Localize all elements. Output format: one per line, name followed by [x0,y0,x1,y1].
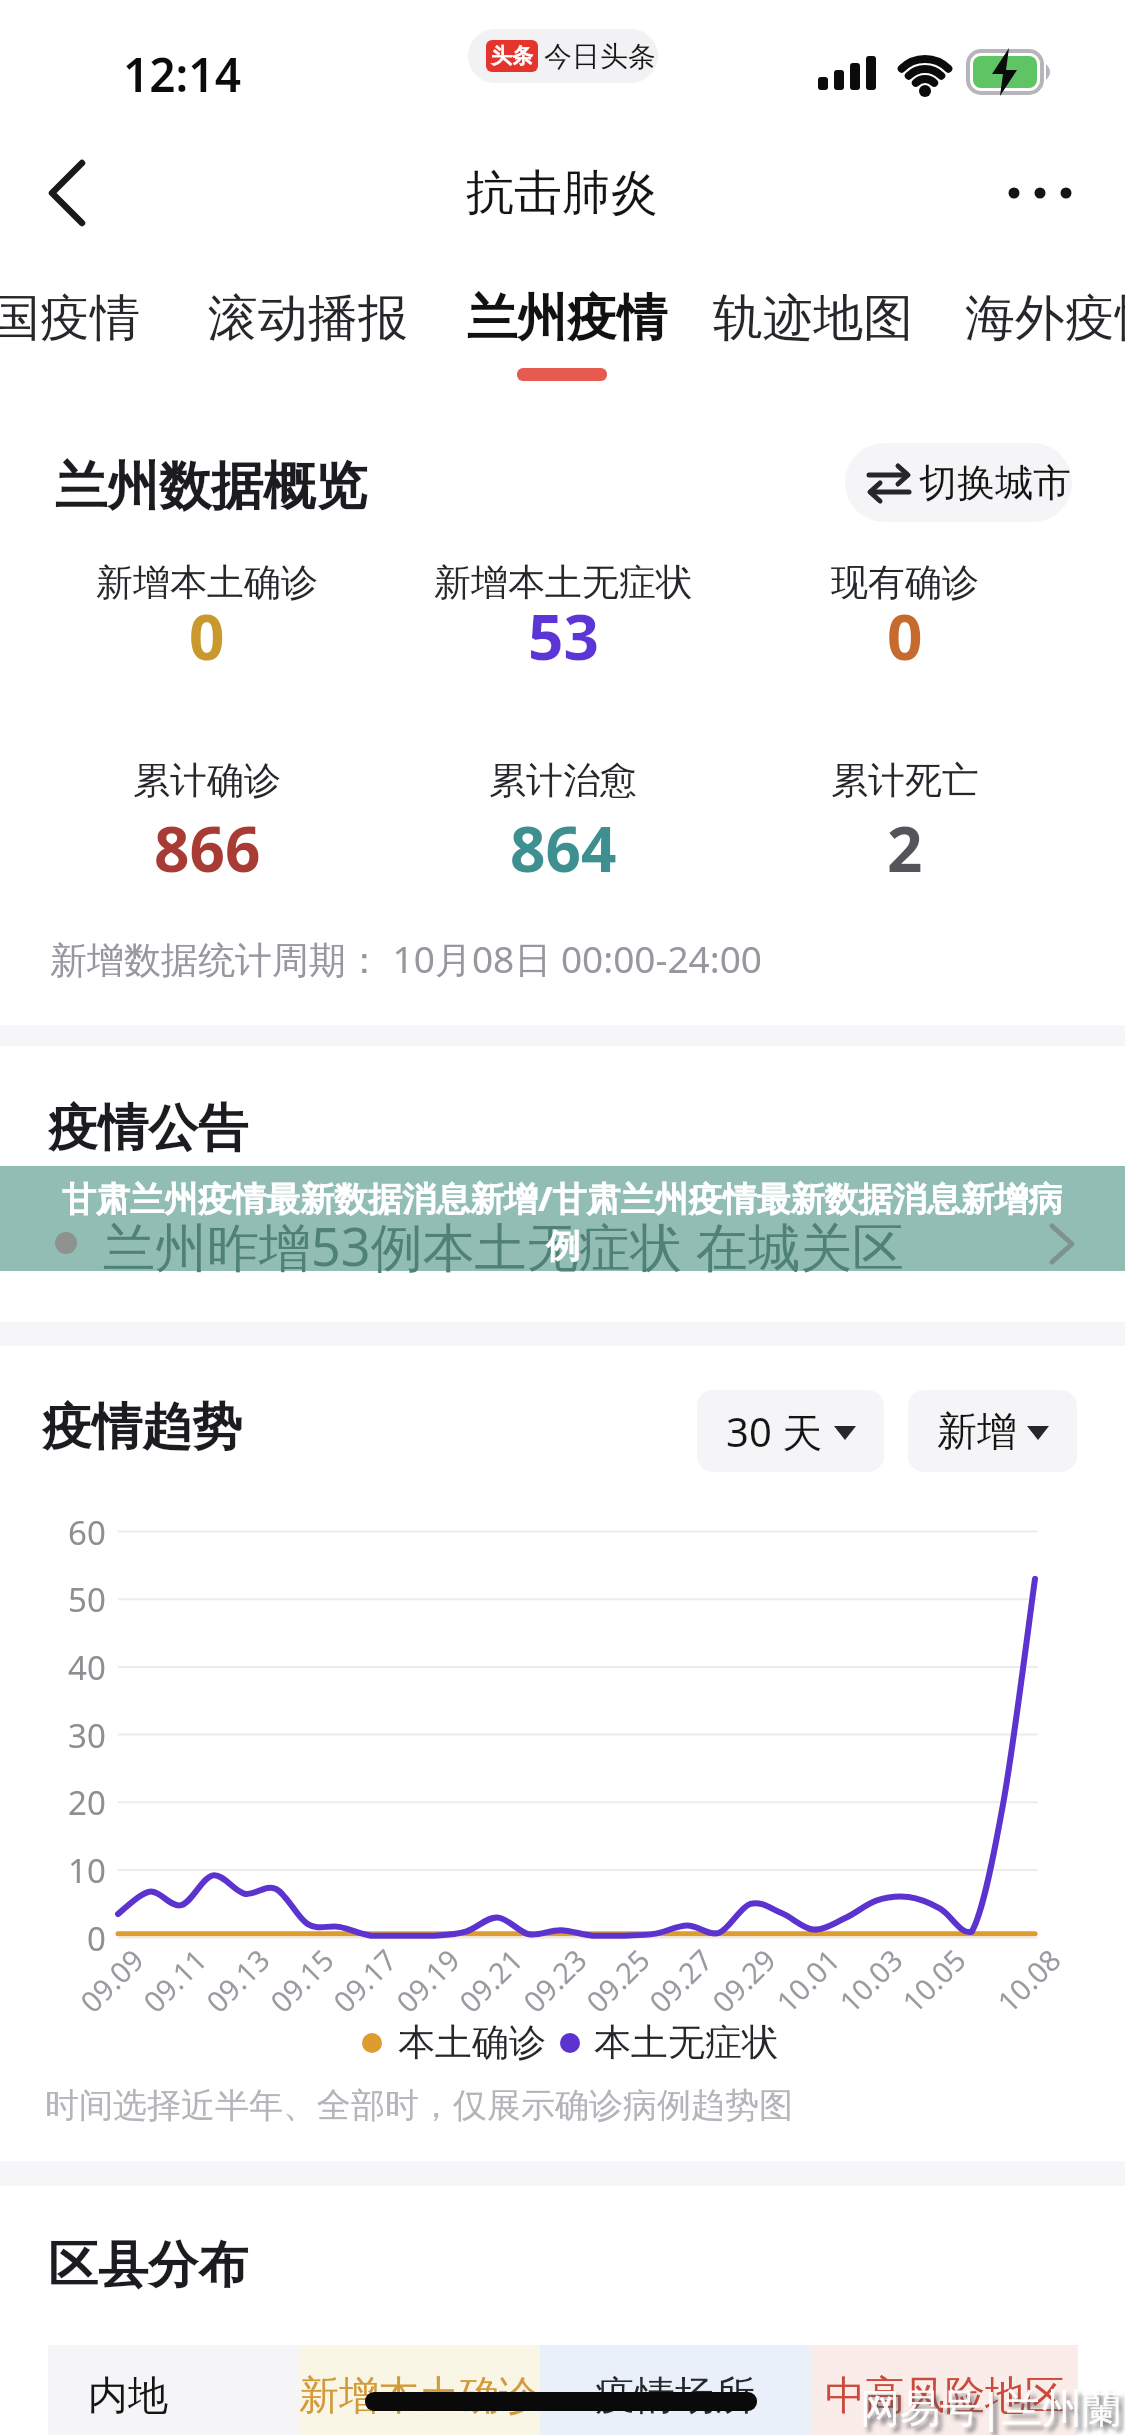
staticText: 09.19 [387,1940,468,2020]
staticText: 新增本土无症状 [434,559,693,606]
staticText: 现有确诊 [831,559,979,606]
staticText: 切换城市 [919,459,1071,507]
staticText: 海外疫情 [965,287,1125,350]
staticText: 本土无症状 [594,2019,779,2066]
staticText: 今日头条 [544,39,656,74]
button[interactable]: 新增 [908,1390,1077,1472]
button[interactable] [811,2345,1078,2435]
staticText: 内地 [88,2370,168,2420]
staticText: 滚动播报 [208,287,408,350]
staticText: 抗击肺炎 [466,163,658,223]
staticText: 网易号|兰州蘭 [860,2379,1123,2434]
staticText: 09.29 [703,1940,784,2020]
staticText: 53 [528,594,599,678]
staticText: 12:14 [123,43,241,106]
button[interactable]: 滚动播报 [205,280,411,356]
staticText: 40 [68,1645,106,1690]
staticText: 新增数据统计周期： 10月08日 00:00-24:00 [50,933,762,984]
staticText: 866 [154,806,261,890]
staticText: 累计死亡 [831,757,979,804]
staticText: 新增本土确诊 [299,2370,539,2420]
button[interactable]: 轨迹地图 [710,280,916,356]
staticText: 09.17 [324,1940,405,2020]
staticText: 0 [87,1916,106,1961]
button[interactable] [48,2345,299,2435]
staticText: 累计确诊 [133,757,281,804]
staticText: 30 [68,1713,106,1758]
staticText: 时间选择近半年、全部时，仅展示确诊病例趋势图 [45,2084,793,2127]
staticText: 10.05 [893,1940,974,2020]
staticText: 10.08 [988,1940,1069,2020]
staticText: 疫情趋势 [42,1396,242,1459]
staticText: 0 [189,594,225,678]
button[interactable]: 海外疫情 [965,280,1125,356]
button[interactable]: 切换城市 [845,443,1072,522]
button[interactable]: 兰州疫情 [464,280,670,356]
staticText: 全国疫情 [0,287,140,350]
button[interactable]: 全国疫情 [0,280,160,356]
staticText: 兰州数据概览 [55,454,367,520]
staticText: 疫情公告 [48,1097,248,1160]
staticText: 10 [68,1848,106,1893]
staticText: 09.25 [577,1940,658,2020]
button[interactable]: 30 天 [697,1390,884,1472]
staticText: 10.03 [830,1940,911,2020]
staticText: 头条 [491,43,533,69]
staticText: 疫情场所 [595,2370,755,2420]
button[interactable] [30,155,110,235]
staticText: 60 [68,1510,106,1555]
staticText: 09.15 [261,1940,342,2020]
staticText: 例 [546,1225,580,1268]
staticText: 0 [887,594,923,678]
staticText: 09.09 [71,1940,152,2020]
button[interactable] [1000,160,1090,226]
staticText: 累计治愈 [489,757,637,804]
staticText: 10.01 [767,1940,848,2020]
staticText: 09.21 [450,1940,531,2020]
staticText: 09.13 [197,1940,278,2020]
staticText: 新增 [937,1406,1017,1456]
staticText: 甘肃兰州疫情最新数据消息新增/甘肃兰州疫情最新数据消息新增病 [62,1175,1063,1221]
staticText: 09.27 [640,1940,721,2020]
button[interactable]: 头条 [468,29,658,83]
staticText: 20 [68,1780,106,1825]
button[interactable] [299,2345,540,2435]
staticText: 兰州昨增53例本土无症状 在城关区 [103,1210,905,1281]
staticText: 中高风险地区 [825,2370,1065,2420]
staticText: 09.23 [514,1940,595,2020]
staticText: 新增本土确诊 [96,559,318,606]
staticText: 兰州疫情 [467,287,667,350]
staticText: 本土确诊 [398,2019,546,2066]
staticText: 30 天 [726,1404,823,1459]
staticText: 09.11 [134,1940,215,2020]
button[interactable] [540,2345,811,2435]
staticText: 轨迹地图 [713,287,913,350]
staticText: 864 [510,806,617,890]
staticText: 2 [887,806,923,890]
button[interactable]: 兰州昨增53例本土无症状 在城关区 [0,1190,1125,1285]
staticText: 区县分布 [48,2234,248,2297]
staticText: 50 [68,1577,106,1622]
